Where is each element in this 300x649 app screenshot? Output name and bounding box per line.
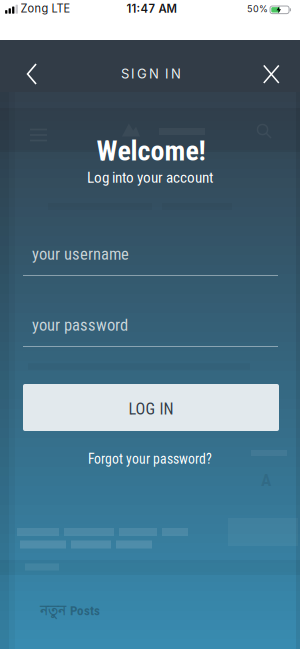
staticText: 11:47 AM bbox=[126, 2, 176, 15]
staticText: নতুন Posts bbox=[40, 602, 100, 621]
staticText: Log into your account bbox=[87, 169, 213, 186]
button[interactable]: LOG IN bbox=[23, 384, 279, 431]
staticText: Forgot your password? bbox=[88, 451, 212, 467]
staticText: 50% bbox=[247, 3, 268, 14]
staticText: Zong LTE bbox=[20, 2, 70, 15]
staticText: your password bbox=[32, 315, 128, 335]
staticText: LOG IN bbox=[128, 399, 173, 419]
staticText: A bbox=[261, 470, 271, 490]
button[interactable]: Back bbox=[18, 58, 46, 90]
staticText: your username bbox=[32, 244, 129, 264]
staticText: Welcome! bbox=[96, 135, 205, 167]
staticText: S I G N I N bbox=[121, 66, 181, 82]
button[interactable]: Close bbox=[256, 58, 287, 90]
button[interactable]: Forgot your password? bbox=[88, 451, 212, 467]
